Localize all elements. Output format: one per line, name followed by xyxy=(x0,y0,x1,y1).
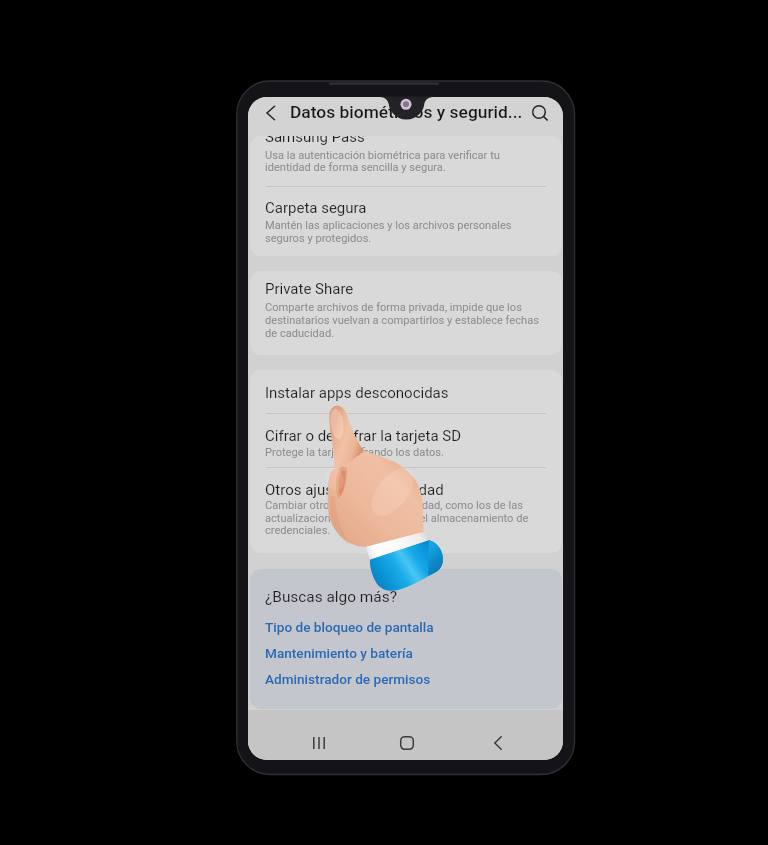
staticText: Samsung Pass xyxy=(265,136,365,146)
button[interactable]: Back xyxy=(256,99,284,127)
button[interactable] xyxy=(250,370,562,413)
staticText: Usa la autenticación biométrica para ver… xyxy=(265,149,500,162)
staticText: Otros ajustes de seguridad xyxy=(265,481,444,499)
button[interactable] xyxy=(250,136,562,186)
button[interactable] xyxy=(250,271,562,355)
staticText: credenciales. xyxy=(265,524,331,537)
staticText: Protege la tarjeta cifrando los datos. xyxy=(265,446,444,459)
staticText: actualizaciones de seguridad y el almace… xyxy=(265,512,529,525)
staticText: Datos biométricos y segurid... xyxy=(290,102,523,122)
button[interactable]: Administrador de permisos xyxy=(250,665,562,695)
staticText: Carpeta segura xyxy=(265,199,367,217)
staticText: Administrador de permisos xyxy=(265,671,431,687)
staticText: Comparte archivos de forma privada, impi… xyxy=(265,301,522,314)
staticText: Instalar apps desconocidas xyxy=(265,384,449,402)
staticText: Private Share xyxy=(265,280,354,298)
staticText: Mantenimiento y batería xyxy=(265,645,413,661)
button[interactable]: Search xyxy=(525,98,553,126)
staticText: destinatarios vuelvan a compartirlos y e… xyxy=(265,314,539,327)
staticText: seguros y protegidos. xyxy=(265,232,372,245)
staticText: de caducidad. xyxy=(265,327,335,340)
staticText: Mantén las aplicaciones y los archivos p… xyxy=(265,219,512,232)
button[interactable] xyxy=(250,413,562,467)
button[interactable] xyxy=(250,186,562,256)
button[interactable]: Mantenimiento y batería xyxy=(250,639,562,669)
button[interactable]: Tipo de bloqueo de pantalla xyxy=(250,613,562,643)
button[interactable]: Back xyxy=(476,721,520,760)
staticText: identidad de forma sencilla y segura. xyxy=(265,161,446,174)
staticText: Cambiar otros ajustes de seguridad, como… xyxy=(265,499,523,512)
staticText: Tipo de bloqueo de pantalla xyxy=(265,619,434,635)
button[interactable] xyxy=(250,467,562,553)
button[interactable]: Recent apps xyxy=(297,721,341,760)
button[interactable]: Home xyxy=(385,721,429,760)
staticText: Cifrar o descifrar la tarjeta SD xyxy=(265,427,462,445)
staticText: ¿Buscas algo más? xyxy=(265,588,397,606)
